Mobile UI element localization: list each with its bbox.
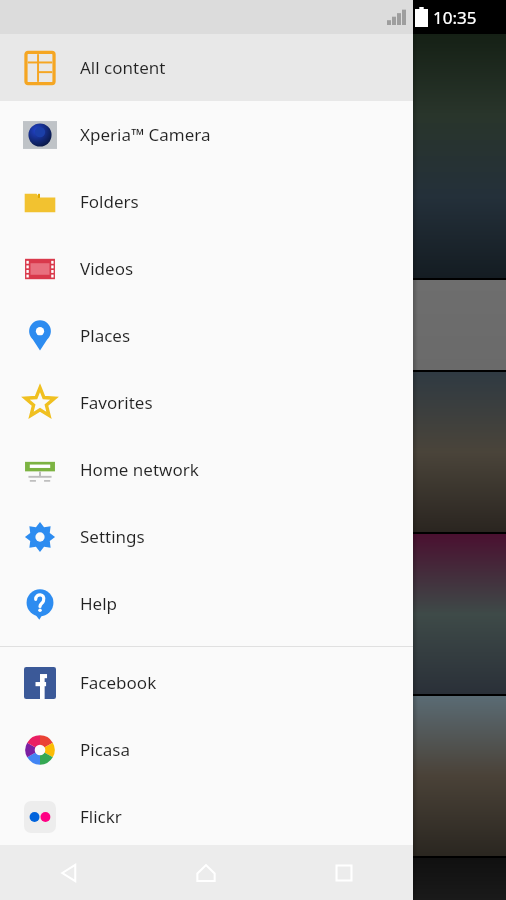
staticText: Favorites: [80, 391, 153, 414]
button[interactable]: Flickr: [0, 783, 413, 850]
button[interactable]: Help: [0, 570, 413, 637]
button[interactable]: Videos: [0, 235, 413, 302]
staticText: 10:35: [433, 6, 477, 29]
staticText: Home network: [80, 458, 199, 481]
staticText: Folders: [80, 190, 139, 213]
staticText: Videos: [80, 257, 134, 280]
button[interactable]: [0, 372, 506, 532]
staticText: Settings: [80, 525, 145, 548]
button[interactable]: [0, 280, 506, 370]
staticText: Flickr: [80, 805, 122, 828]
staticText: Places: [80, 324, 131, 347]
button[interactable]: Picasa: [0, 716, 413, 783]
button[interactable]: Home network: [0, 436, 413, 503]
button[interactable]: All content: [0, 34, 413, 101]
staticText: Picasa: [80, 738, 131, 761]
button[interactable]: [0, 696, 506, 856]
staticText: Facebook: [80, 671, 157, 694]
staticText: Help: [80, 592, 118, 615]
button[interactable]: [0, 34, 506, 278]
button[interactable]: Places: [0, 302, 413, 369]
button[interactable]: [0, 858, 506, 900]
staticText: Xperia™ Camera: [80, 123, 211, 146]
button[interactable]: Folders: [0, 168, 413, 235]
button[interactable]: [0, 534, 506, 694]
button[interactable]: Xperia™ Camera: [0, 101, 413, 168]
staticText: All content: [80, 56, 166, 79]
button[interactable]: Favorites: [0, 369, 413, 436]
button[interactable]: Settings: [0, 503, 413, 570]
button[interactable]: Facebook: [0, 649, 413, 716]
